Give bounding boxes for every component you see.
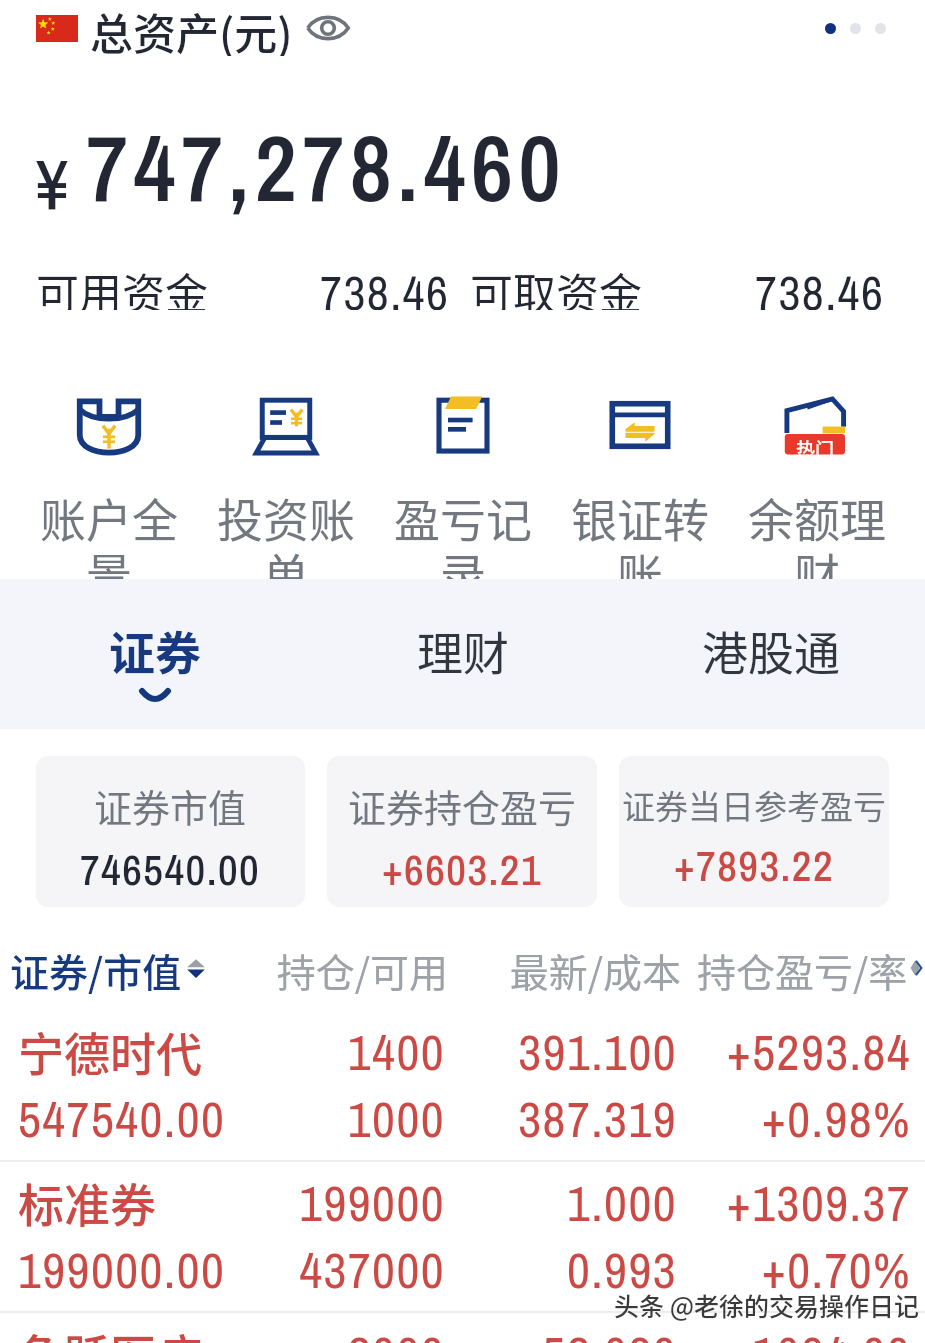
staticText: 证券当日参考盈亏 [622, 781, 886, 829]
staticText: +5293.84 [677, 1018, 911, 1085]
button[interactable]: 证券 [0, 617, 309, 701]
staticText: 1400 [259, 1018, 445, 1085]
staticText: 437000 [259, 1236, 445, 1303]
staticText: +1684.00 [677, 1320, 911, 1343]
staticText: +1309.37 [677, 1169, 911, 1236]
staticText: +0.98% [677, 1085, 911, 1152]
staticText: 747,278.460 [86, 106, 567, 230]
button[interactable]: 鱼跃医疗 [0, 1313, 925, 1343]
button[interactable]: 投资账单 [197, 392, 374, 605]
staticText: 证券/市值 [10, 942, 182, 994]
button[interactable]: Toggle balance visibility [305, 11, 351, 45]
button[interactable]: 标准券 [0, 1162, 925, 1311]
staticText: 2000 [259, 1320, 445, 1343]
staticText: 可取资金 [470, 260, 642, 310]
button[interactable]: 港股通 [617, 617, 925, 684]
staticText: 738.46 [755, 260, 885, 310]
staticText: 1.000 [445, 1169, 677, 1236]
staticText: 547540.00 [18, 1085, 259, 1152]
staticText: 199000 [259, 1169, 445, 1236]
button[interactable]: 热门 [728, 392, 905, 605]
staticText: 总资产(元) [90, 0, 293, 56]
staticText: 余额理财 [746, 484, 888, 605]
staticText: 持仓/可用 [254, 942, 448, 994]
staticText: 738.46 [320, 260, 450, 310]
staticText: 头条 @老徐的交易操作日记 [614, 1287, 919, 1323]
staticText: 证券市值 [94, 778, 247, 833]
staticText: 投资账单 [215, 484, 357, 605]
staticText: 证券持仓盈亏 [348, 778, 577, 833]
staticText: 387.319 [445, 1085, 677, 1152]
staticText: 宁德时代 [18, 1018, 259, 1085]
staticText: 391.100 [445, 1018, 677, 1085]
button[interactable]: 盈亏记录 [374, 392, 551, 605]
staticText: 盈亏记录 [392, 484, 534, 605]
button[interactable]: Sort by profit [697, 942, 924, 994]
staticText: 港股通 [702, 617, 840, 684]
staticText: 持仓盈亏/率 [697, 942, 908, 994]
staticText: 鱼跃医疗 [18, 1320, 259, 1343]
button[interactable]: 证券持仓盈亏 [327, 756, 597, 907]
staticText: 746540.00 [80, 840, 261, 898]
staticText: 52.030 [445, 1320, 677, 1343]
button[interactable]: 账户全景 [20, 392, 197, 605]
staticText: 199000.00 [18, 1236, 259, 1303]
staticText: 0.993 [445, 1236, 677, 1303]
staticText: 热门 [796, 435, 835, 455]
button[interactable]: 理财 [309, 617, 617, 684]
staticText: 可用资金 [36, 260, 208, 310]
button[interactable]: 宁德时代 [0, 1011, 925, 1160]
staticText: 理财 [417, 617, 509, 684]
button[interactable]: 证券当日参考盈亏 [619, 756, 889, 907]
button[interactable]: 证券市值 [36, 756, 305, 907]
staticText: +7893.22 [674, 836, 835, 894]
staticText: 证券 [109, 617, 201, 684]
staticText: 最新/成本 [448, 942, 681, 994]
button[interactable]: 证券/市值 [10, 942, 254, 994]
staticText: +0.70% [677, 1236, 911, 1303]
staticText: 1000 [259, 1085, 445, 1152]
staticText: 银证转账 [569, 484, 711, 605]
button[interactable]: 银证转账 [551, 392, 728, 605]
staticText: ¥ [36, 138, 68, 232]
staticText: 标准券 [18, 1169, 259, 1236]
staticText: 账户全景 [38, 484, 180, 605]
staticText: +6603.21 [382, 840, 543, 898]
